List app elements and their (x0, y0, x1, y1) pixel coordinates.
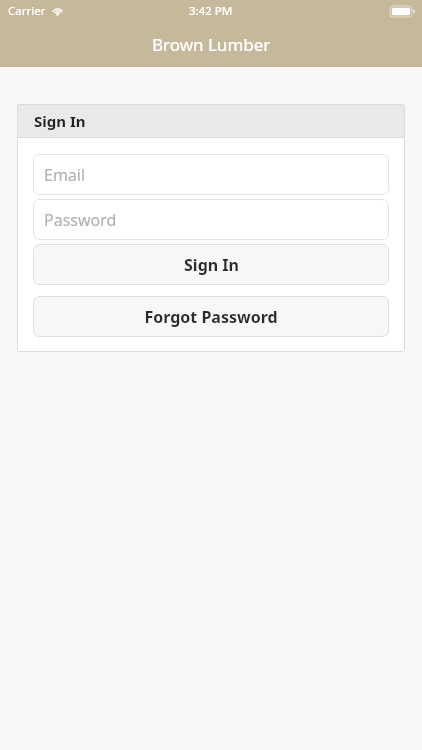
button[interactable]: Sign In (33, 244, 389, 285)
staticText: Sign In (184, 254, 239, 276)
staticText: Email (44, 164, 86, 186)
staticText: Brown Lumber (152, 33, 271, 56)
button[interactable]: Email (33, 154, 389, 195)
staticText: 3:42 PM (189, 3, 233, 19)
staticText: Forgot Password (144, 306, 278, 328)
staticText: Sign In (34, 111, 86, 131)
button[interactable]: Forgot Password (33, 296, 389, 337)
button[interactable]: Password (33, 199, 389, 240)
staticText: Carrier (8, 3, 46, 19)
staticText: Password (44, 209, 117, 231)
